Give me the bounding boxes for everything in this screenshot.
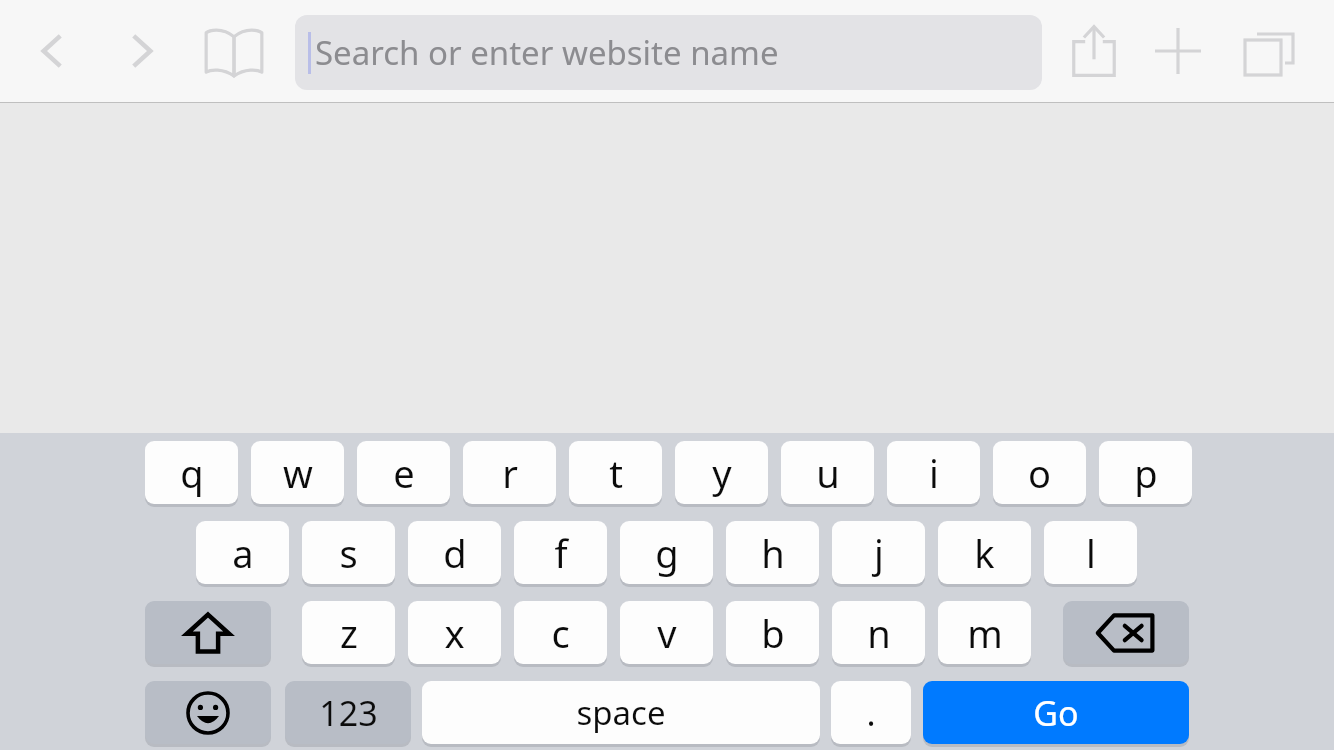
button[interactable]: Emoji xyxy=(145,681,271,744)
staticText: o xyxy=(1028,447,1051,499)
button[interactable]: i xyxy=(887,441,980,504)
staticText: n xyxy=(867,607,891,659)
staticText: y xyxy=(712,447,732,499)
staticText: t xyxy=(609,447,623,499)
staticText: r xyxy=(502,447,518,499)
staticText: p xyxy=(1134,447,1158,499)
button[interactable]: s xyxy=(302,521,395,584)
button[interactable]: p xyxy=(1099,441,1192,504)
button[interactable]: f xyxy=(514,521,607,584)
staticText: b xyxy=(761,607,785,659)
staticText: s xyxy=(339,527,358,579)
button[interactable]: New tab xyxy=(1140,12,1216,90)
staticText: g xyxy=(655,527,679,579)
button[interactable]: 123 xyxy=(285,681,411,744)
staticText: Go xyxy=(1033,690,1079,736)
button[interactable]: b xyxy=(726,601,819,664)
button[interactable]: n xyxy=(832,601,925,664)
button[interactable]: y xyxy=(675,441,768,504)
staticText: z xyxy=(340,607,358,659)
button[interactable]: x xyxy=(408,601,501,664)
button[interactable]: l xyxy=(1044,521,1137,584)
staticText: x xyxy=(444,607,465,659)
button[interactable]: r xyxy=(463,441,556,504)
staticText: w xyxy=(283,447,313,499)
staticText: m xyxy=(967,607,1003,659)
button[interactable]: Bookmarks xyxy=(196,14,272,90)
staticText: space xyxy=(576,690,666,735)
button[interactable]: m xyxy=(938,601,1031,664)
button[interactable]: q xyxy=(145,441,238,504)
staticText: Search or enter website name xyxy=(315,30,779,75)
button[interactable]: o xyxy=(993,441,1086,504)
button[interactable]: Show tabs xyxy=(1228,12,1310,90)
button[interactable]: z xyxy=(302,601,395,664)
button[interactable]: k xyxy=(938,521,1031,584)
staticText: v xyxy=(657,607,677,659)
staticText: 123 xyxy=(319,690,378,736)
button[interactable]: c xyxy=(514,601,607,664)
button[interactable]: w xyxy=(251,441,344,504)
staticText: j xyxy=(874,527,884,579)
button[interactable]: t xyxy=(569,441,662,504)
button[interactable]: g xyxy=(620,521,713,584)
button[interactable]: space xyxy=(422,681,820,744)
staticText: k xyxy=(974,527,995,579)
staticText: c xyxy=(551,607,570,659)
button[interactable]: Go xyxy=(923,681,1189,744)
staticText: u xyxy=(816,447,840,499)
button[interactable]: Search or enter website name xyxy=(295,15,1042,90)
button[interactable]: Forward xyxy=(110,12,174,90)
staticText: h xyxy=(761,527,785,579)
staticText: . xyxy=(866,690,876,736)
staticText: q xyxy=(180,447,204,499)
button[interactable]: h xyxy=(726,521,819,584)
button[interactable]: u xyxy=(781,441,874,504)
button[interactable]: e xyxy=(357,441,450,504)
button[interactable]: Back xyxy=(20,12,84,90)
button[interactable]: v xyxy=(620,601,713,664)
button[interactable]: j xyxy=(832,521,925,584)
staticText: i xyxy=(929,447,939,499)
staticText: d xyxy=(443,527,467,579)
button[interactable]: d xyxy=(408,521,501,584)
staticText: l xyxy=(1086,527,1096,579)
button[interactable]: a xyxy=(196,521,289,584)
staticText: f xyxy=(554,527,568,579)
button[interactable]: Shift xyxy=(145,601,271,664)
staticText: a xyxy=(232,527,254,579)
button[interactable]: Share xyxy=(1056,12,1132,90)
button[interactable]: . xyxy=(831,681,911,744)
staticText: e xyxy=(393,447,415,499)
button[interactable]: Delete xyxy=(1063,601,1189,664)
